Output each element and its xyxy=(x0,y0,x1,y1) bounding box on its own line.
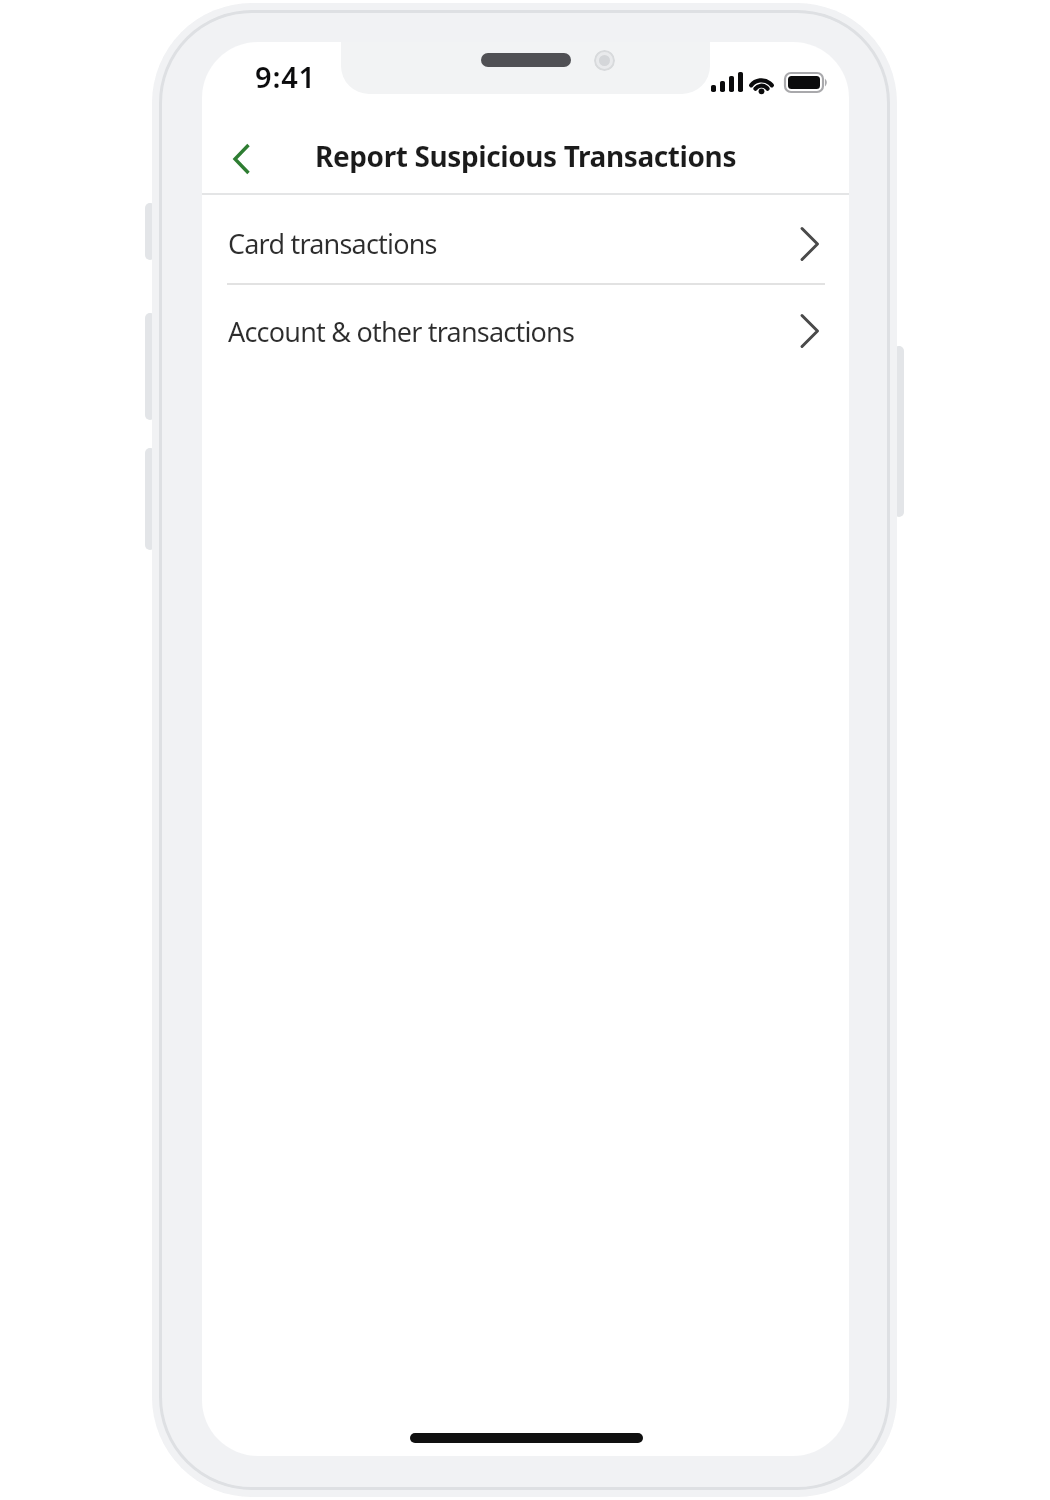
staticText: 9:41 xyxy=(255,57,316,91)
button[interactable]: Account & other transactions xyxy=(202,285,849,377)
staticText: Card transactions xyxy=(228,225,437,262)
button[interactable]: Card transactions xyxy=(202,199,849,288)
staticText: Account & other transactions xyxy=(228,313,575,350)
button[interactable] xyxy=(222,137,262,181)
staticText: Report Suspicious Transactions xyxy=(315,137,737,173)
